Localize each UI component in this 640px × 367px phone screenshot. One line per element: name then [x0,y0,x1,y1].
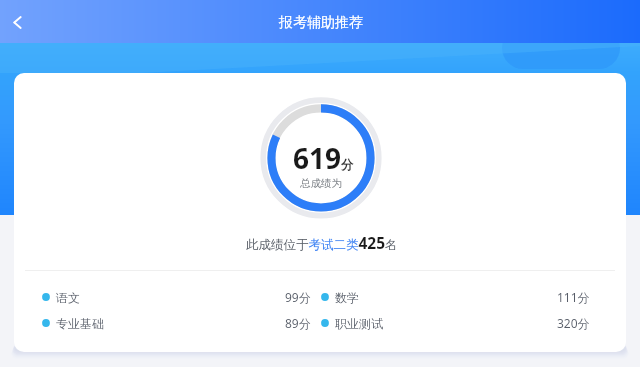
button[interactable]: 语文 [42,289,311,305]
staticText: 报考辅助推荐 [279,14,363,32]
staticText: 619分 [293,139,354,177]
staticText: 总成绩为 [300,177,342,190]
staticText: 数学 [335,290,359,305]
staticText: 89分 [285,315,311,331]
button[interactable]: 数学 [321,289,590,305]
staticText: 此成绩位于考试二类425名 [246,232,398,253]
staticText: 职业测试 [335,316,383,331]
staticText: 111分 [557,289,590,305]
staticText: 99分 [285,289,311,305]
staticText: 语文 [56,290,80,305]
button[interactable]: Back [0,3,36,41]
staticText: 320分 [557,315,590,331]
staticText: 专业基础 [56,316,104,331]
button[interactable]: 职业测试 [321,315,590,331]
button[interactable]: 专业基础 [42,315,311,331]
